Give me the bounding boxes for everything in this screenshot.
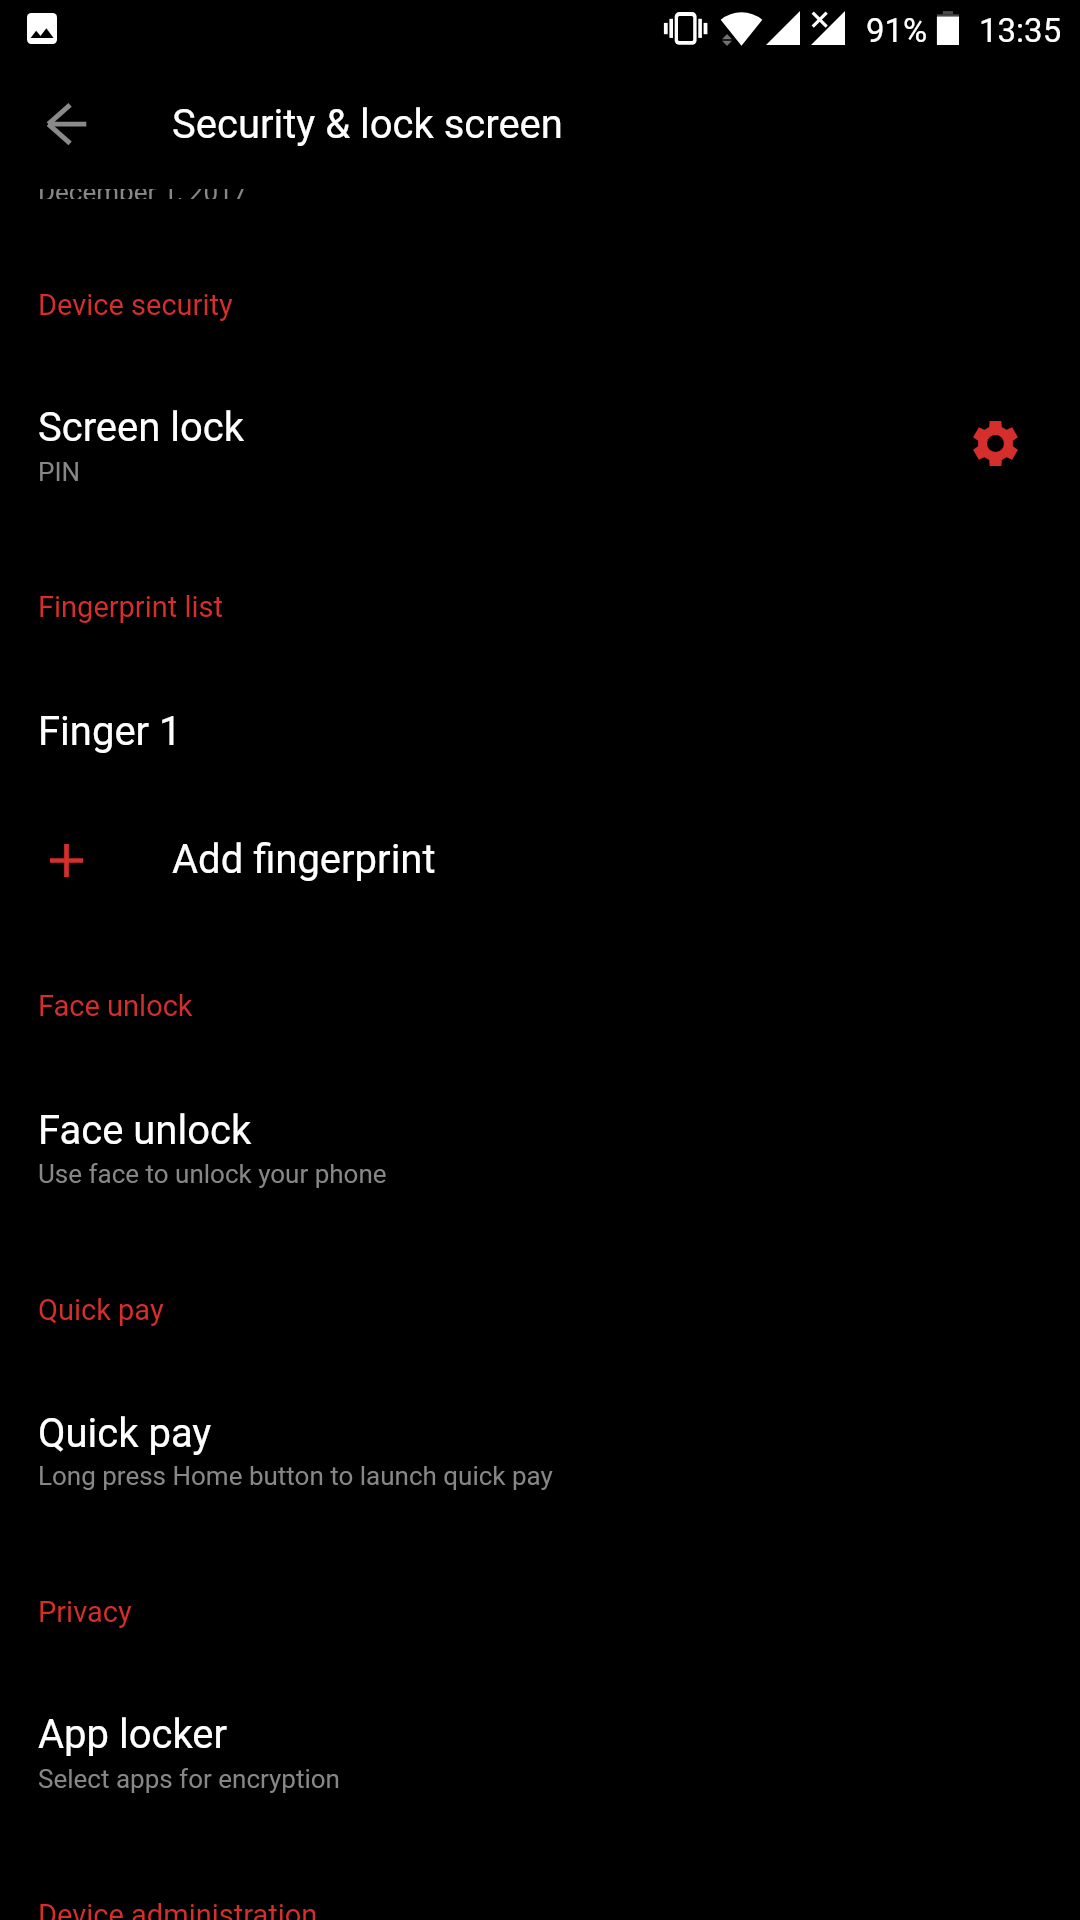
staticText: Device security xyxy=(38,288,233,322)
button[interactable]: Face unlock xyxy=(0,1075,1080,1215)
staticText: 91% xyxy=(866,11,928,50)
staticText: Face unlock xyxy=(38,1107,252,1154)
button[interactable]: Add fingerprint xyxy=(0,804,1080,904)
staticText: Device administration xyxy=(38,1898,318,1920)
staticText: Select apps for encryption xyxy=(38,1764,340,1794)
staticText: Face unlock xyxy=(38,989,193,1023)
staticText: App locker xyxy=(38,1711,228,1758)
staticText: Fingerprint list xyxy=(38,590,224,624)
staticText: Finger 1 xyxy=(38,708,182,755)
staticText: Quick pay xyxy=(38,1293,164,1327)
button[interactable]: App locker xyxy=(0,1680,1080,1820)
staticText: PIN xyxy=(38,457,81,487)
staticText: Privacy xyxy=(38,1595,132,1629)
button[interactable]: Screen lock xyxy=(0,372,1080,512)
staticText: December 1, 2017 xyxy=(38,189,248,199)
staticText: Quick pay xyxy=(38,1410,212,1457)
staticText: Screen lock xyxy=(38,404,245,451)
staticText: Add fingerprint xyxy=(172,836,436,883)
staticText: Security & lock screen xyxy=(172,101,563,148)
staticText: Use face to unlock your phone xyxy=(38,1159,387,1189)
button[interactable]: Quick pay xyxy=(0,1378,1080,1518)
staticText: Long press Home button to launch quick p… xyxy=(38,1461,553,1491)
button[interactable]: Back xyxy=(24,81,109,166)
button[interactable]: Finger 1 xyxy=(0,676,1080,776)
staticText: 13:35 xyxy=(979,11,1062,50)
button[interactable]: Screen lock settings xyxy=(951,399,1039,487)
